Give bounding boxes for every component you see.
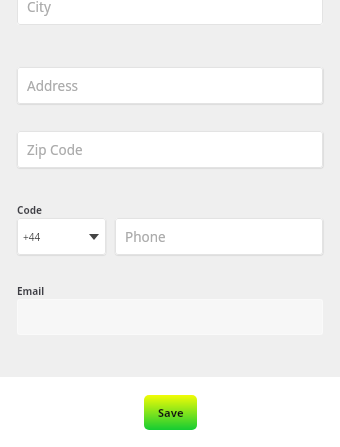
staticText: City [27,0,51,16]
staticText: Phone [125,228,166,246]
staticText: Zip Code [27,141,83,159]
button[interactable]: Save [144,395,197,430]
button[interactable]: Zip Code [17,131,323,168]
button[interactable]: Select country calling code [17,218,106,255]
staticText: Email [17,284,45,298]
staticText: Save [158,405,184,420]
staticText: +44 [23,230,41,244]
staticText: Address [27,77,79,95]
button[interactable]: Phone [115,218,323,255]
button[interactable]: Address [17,67,323,104]
staticText: Code [17,203,42,217]
button[interactable]: City [17,0,323,25]
